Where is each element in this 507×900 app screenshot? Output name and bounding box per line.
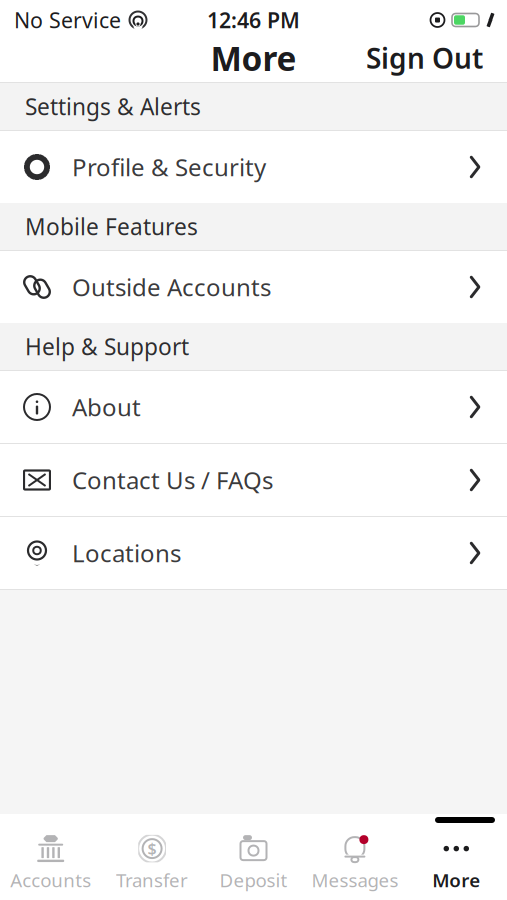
button[interactable]: Messages <box>304 832 406 894</box>
staticText: Profile & Security <box>72 151 266 183</box>
button[interactable]: Accounts <box>0 832 101 894</box>
staticText: Mobile Features <box>25 211 198 241</box>
staticText: Settings & Alerts <box>25 91 201 121</box>
staticText: About <box>72 391 141 423</box>
staticText: Help & Support <box>25 331 189 361</box>
button[interactable]: Locations <box>0 517 507 589</box>
button[interactable]: More <box>406 832 507 894</box>
button[interactable]: Contact Us / FAQs <box>0 444 507 516</box>
staticText: Transfer <box>116 868 188 892</box>
staticText: Locations <box>72 537 181 569</box>
staticText: More <box>210 36 296 80</box>
button[interactable]: About <box>0 371 507 443</box>
button[interactable]: $ <box>101 832 203 894</box>
staticText: Outside Accounts <box>72 271 271 303</box>
staticText: Deposit <box>219 868 287 892</box>
staticText: Messages <box>311 868 398 892</box>
button[interactable]: Sign Out <box>354 31 495 85</box>
staticText: 12:46 PM <box>207 6 300 34</box>
staticText: Sign Out <box>366 39 483 77</box>
staticText: Accounts <box>10 868 91 892</box>
staticText: Contact Us / FAQs <box>72 464 273 496</box>
button[interactable]: Profile & Security <box>0 131 507 203</box>
staticText: $ <box>148 838 157 859</box>
staticText: No Service <box>14 6 121 34</box>
button[interactable]: Outside Accounts <box>0 251 507 323</box>
staticText: More <box>432 868 480 892</box>
button[interactable]: Deposit <box>203 832 304 894</box>
